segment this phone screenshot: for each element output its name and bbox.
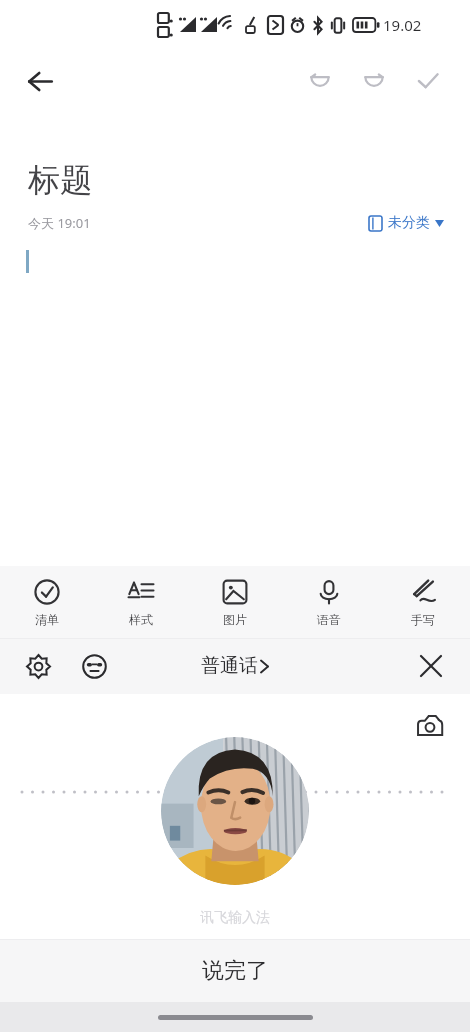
button[interactable]: 图片 <box>188 573 282 633</box>
button[interactable]: 手写 <box>376 573 470 633</box>
staticText: 普通话 <box>201 654 258 678</box>
button[interactable]: 未分类 <box>365 210 448 236</box>
staticText: 未分类 <box>388 214 430 232</box>
button[interactable] <box>161 737 309 885</box>
button[interactable]: Emoji <box>72 644 116 688</box>
staticText: 标题 <box>28 160 92 200</box>
button[interactable]: Undo <box>296 57 344 105</box>
button[interactable]: 样式 <box>94 573 188 633</box>
button[interactable]: 说完了 <box>0 939 470 1002</box>
staticText: 语音 <box>317 612 341 627</box>
staticText: 样式 <box>129 612 153 627</box>
staticText: 今天 19:01 <box>28 214 91 232</box>
button[interactable]: Back <box>14 55 66 107</box>
button[interactable]: 语音 <box>282 573 376 633</box>
staticText: 说完了 <box>202 957 268 985</box>
button[interactable]: Redo <box>350 57 398 105</box>
button[interactable]: Close <box>408 643 454 689</box>
button[interactable]: Camera <box>408 704 452 748</box>
button[interactable]: 普通话 <box>191 648 279 684</box>
button[interactable]: 清单 <box>0 573 94 633</box>
staticText: 19.02 <box>383 15 422 35</box>
button[interactable]: Done <box>404 57 452 105</box>
staticText: 图片 <box>223 612 247 627</box>
staticText: 清单 <box>35 612 59 627</box>
button[interactable]: Settings <box>16 644 60 688</box>
staticText: 手写 <box>411 612 435 627</box>
staticText: 讯飞输入法 <box>200 909 270 927</box>
